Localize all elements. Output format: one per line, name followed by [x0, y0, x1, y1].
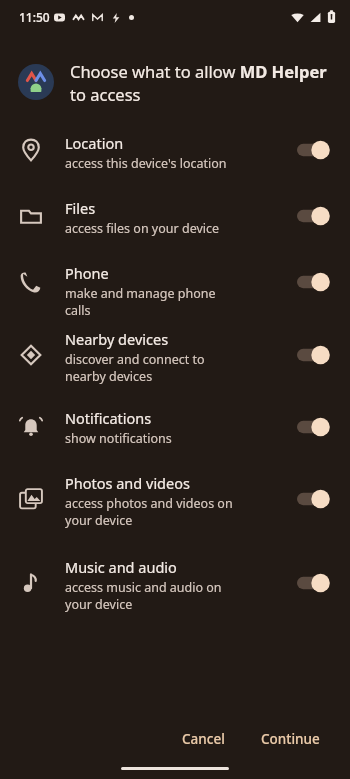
staticText: make and manage phone calls [65, 285, 240, 317]
button[interactable]: Music and audio [0, 545, 350, 615]
staticText: discover and connect to nearby devices [65, 351, 240, 384]
button[interactable]: Notifications [0, 396, 350, 450]
staticText: Continue [261, 730, 320, 748]
button[interactable]: Toggle Nearby devices [297, 344, 335, 366]
button[interactable]: Continue [247, 722, 334, 756]
staticText: Cancel [182, 730, 225, 748]
staticText: Nearby devices [65, 329, 169, 349]
button[interactable]: Toggle Location [297, 139, 335, 161]
staticText: access this device's location [65, 155, 227, 172]
staticText: access photos and videos on your device [65, 495, 240, 528]
button[interactable]: Toggle Notifications [297, 416, 335, 438]
button[interactable]: Nearby devices [0, 317, 350, 387]
staticText: access music and audio on your device [65, 579, 240, 612]
button[interactable]: Files [0, 186, 350, 240]
button[interactable]: Toggle Phone [297, 271, 335, 293]
staticText: 11:50 [19, 9, 50, 25]
button[interactable]: Toggle Photos and videos [297, 488, 335, 510]
staticText: access files on your device [65, 220, 220, 237]
staticText: Notifications [65, 408, 152, 428]
staticText: show notifications [65, 430, 172, 447]
staticText: Photos and videos [65, 473, 190, 493]
staticText: Location [65, 133, 124, 153]
staticText: Phone [65, 263, 109, 283]
staticText: Files [65, 198, 96, 218]
button[interactable]: Toggle Files [297, 205, 335, 227]
button[interactable]: Toggle Music and audio [297, 572, 335, 594]
staticText: Choose what to allow MD Helper to access [70, 60, 328, 106]
button[interactable]: Phone [0, 251, 350, 305]
button[interactable]: Photos and videos [0, 461, 350, 531]
button[interactable]: Cancel [168, 722, 239, 756]
button[interactable]: Location [0, 121, 350, 175]
staticText: Music and audio [65, 557, 177, 577]
